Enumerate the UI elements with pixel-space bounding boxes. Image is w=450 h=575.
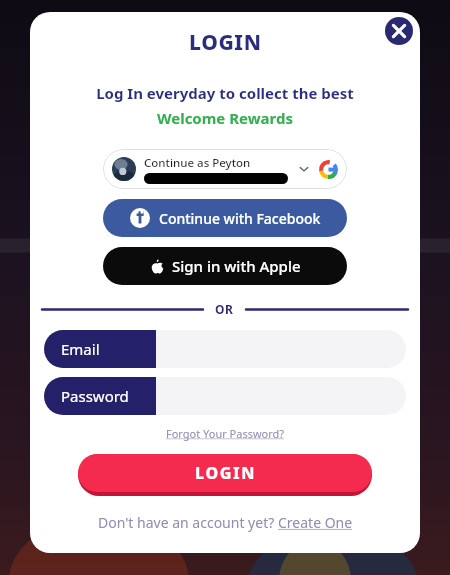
staticText: LOGIN bbox=[195, 462, 256, 484]
staticText: Password bbox=[61, 386, 129, 406]
button[interactable]: LOGIN bbox=[78, 454, 372, 496]
staticText: Don't have an account yet? bbox=[98, 513, 278, 532]
button[interactable]: Forgot Your Password? bbox=[160, 424, 291, 443]
staticText: OR bbox=[215, 301, 234, 317]
staticText: Continue as Peyton bbox=[144, 155, 251, 171]
button[interactable]: Create One bbox=[278, 513, 353, 532]
staticText: Continue with Facebook bbox=[159, 209, 321, 228]
button[interactable]: Password bbox=[44, 377, 406, 415]
button[interactable]: Email bbox=[44, 330, 406, 368]
staticText: LOGIN bbox=[189, 28, 262, 57]
button[interactable]: Continue with Facebook bbox=[103, 199, 347, 237]
button[interactable]: Sign in with Apple bbox=[103, 247, 347, 285]
button[interactable]: Continue as Peyton bbox=[103, 149, 347, 189]
staticText: Create One bbox=[278, 513, 353, 532]
staticText: Email bbox=[61, 339, 100, 359]
staticText: Log In everyday to collect the best bbox=[96, 83, 354, 103]
button[interactable]: Close bbox=[385, 17, 413, 45]
staticText: Sign in with Apple bbox=[172, 256, 301, 276]
staticText: Forgot Your Password? bbox=[166, 426, 285, 441]
staticText: Welcome Rewards bbox=[157, 108, 293, 128]
